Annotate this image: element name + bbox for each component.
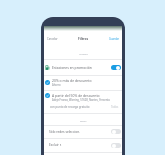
staticText: A partir del 50% de descuento: [52, 93, 100, 98]
staticText: Excluir r.: [49, 143, 62, 147]
button[interactable]: Cancelar: [46, 36, 59, 42]
button[interactable]: Guardar: [108, 36, 121, 42]
staticText: Cancelar: [47, 37, 58, 41]
staticText: Ahorro: [52, 83, 61, 87]
button[interactable]: Gas station: [44, 59, 122, 75]
button[interactable]: Selected: [44, 75, 122, 90]
button[interactable]: Toggle off: [111, 129, 121, 134]
staticText: Todos: [111, 105, 119, 109]
button[interactable]: Sólo redes seleccion.: [44, 125, 122, 138]
staticText: Sólo redes seleccion.: [49, 130, 81, 134]
other: Gas station: [45, 65, 50, 70]
button[interactable]: Selected: [44, 90, 122, 113]
button[interactable]: Excluir r.: [44, 138, 122, 152]
staticText: Filtros: [78, 37, 88, 41]
button[interactable]: Toggle on: [111, 65, 121, 70]
staticText: Adeje Fronza, Warring, 51628, Nantes, Fr…: [52, 98, 110, 102]
staticText: AHORRO: [79, 53, 88, 56]
staticText: 20% o más de descuento: [52, 78, 92, 83]
other: Selected: [45, 93, 50, 98]
staticText: con punto de recarga gratuito: [50, 105, 90, 109]
button[interactable]: Toggle off: [111, 143, 121, 148]
staticText: Estaciones en promoción: [52, 65, 92, 70]
other: Selected: [45, 80, 50, 85]
staticText: REDES: [80, 120, 87, 123]
staticText: Guardar: [109, 37, 120, 41]
